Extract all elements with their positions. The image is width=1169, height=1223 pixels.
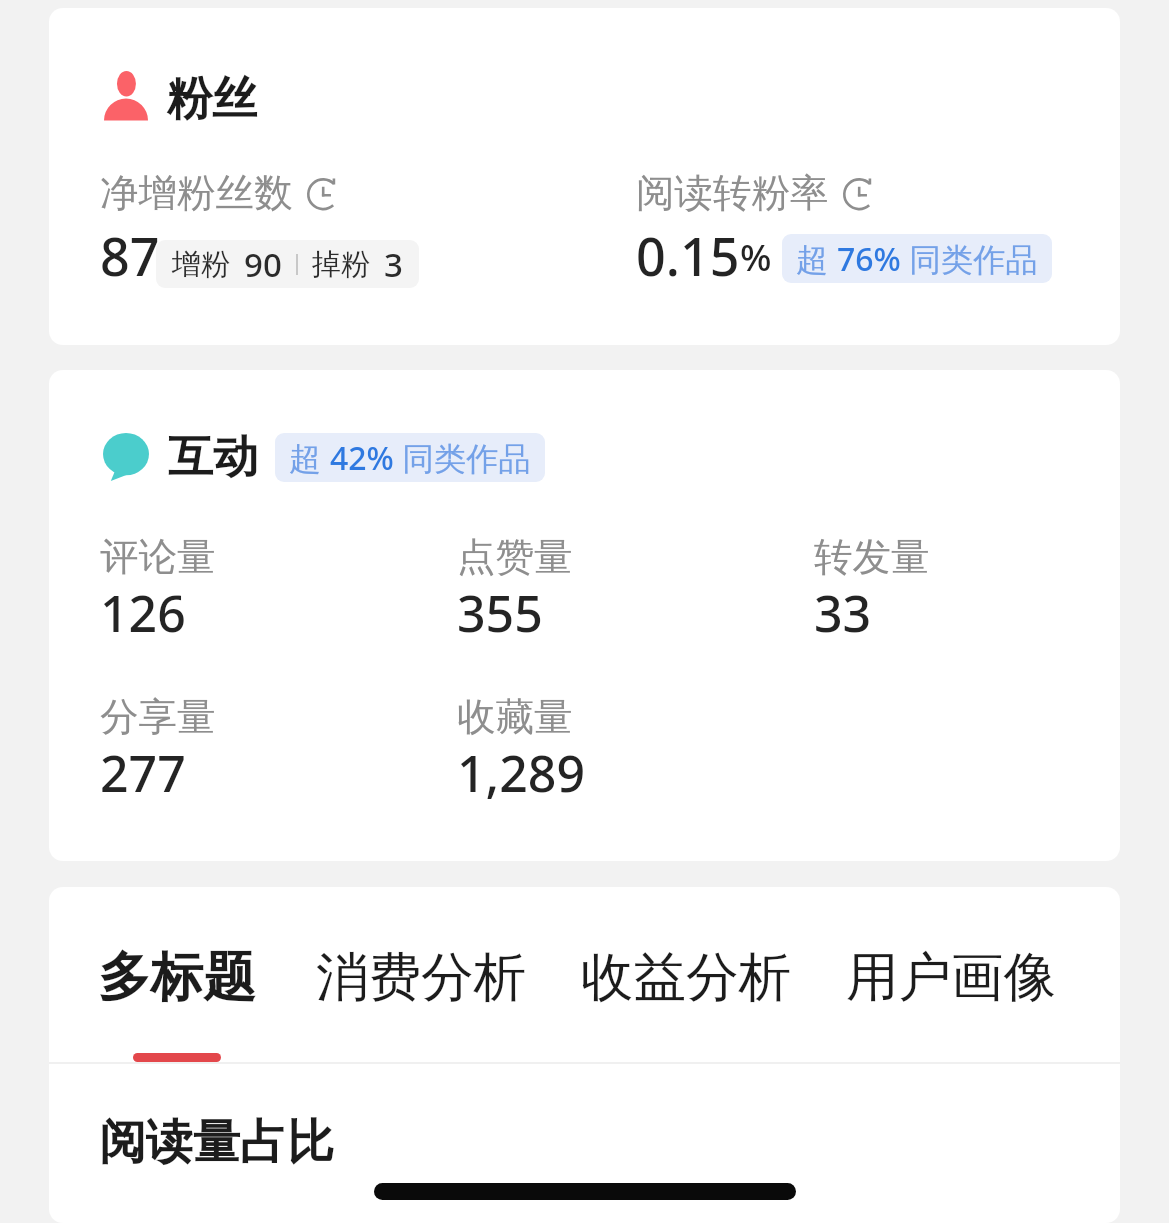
button[interactable]: 用户画像 — [846, 944, 1056, 1062]
button[interactable]: 收益分析 — [581, 944, 791, 1062]
button[interactable]: 点赞量 — [457, 533, 814, 650]
button[interactable]: 评论量 — [100, 533, 457, 650]
button[interactable]: 净增粉丝数 — [100, 169, 343, 218]
staticText: 评论量 — [100, 533, 216, 582]
button[interactable]: 互动 — [100, 429, 545, 486]
button[interactable]: 多标题 — [98, 944, 256, 1062]
staticText: 转发量 — [814, 533, 930, 582]
staticText: 互动 — [168, 429, 258, 486]
button[interactable]: 粉丝 — [100, 71, 257, 128]
staticText: 87 — [100, 220, 160, 291]
other: Recently updated — [843, 175, 879, 212]
staticText: 粉丝 — [167, 71, 257, 128]
staticText: 分享量 — [100, 693, 216, 742]
staticText: 超 — [289, 436, 330, 480]
staticText: 同类作品 — [901, 237, 1038, 281]
staticText: 90 — [244, 242, 282, 287]
staticText: 多标题 — [98, 944, 256, 1010]
staticText: 净增粉丝数 — [100, 169, 293, 218]
button[interactable]: 0.15 — [636, 220, 1052, 291]
staticText: 用户画像 — [846, 944, 1056, 1010]
staticText: 33 — [814, 579, 872, 647]
staticText: 0.15 — [636, 220, 740, 291]
staticText: 3 — [384, 242, 403, 287]
button[interactable]: 超 — [782, 234, 1052, 283]
staticText: 1,289 — [457, 739, 586, 807]
button[interactable]: 超 — [275, 433, 545, 482]
staticText: 掉粉 — [312, 246, 370, 283]
staticText: 增粉 — [172, 246, 230, 283]
staticText: 超 — [796, 237, 837, 281]
staticText: 355 — [457, 579, 543, 647]
staticText: 收藏量 — [457, 693, 573, 742]
staticText: 42% — [330, 436, 394, 480]
button[interactable]: 87 — [100, 220, 423, 291]
button[interactable]: 阅读量占比 — [49, 1113, 334, 1172]
button[interactable]: 阅读转粉率 — [636, 169, 879, 218]
other: Recently updated — [307, 175, 343, 212]
staticText: 收益分析 — [581, 944, 791, 1010]
staticText: 消费分析 — [316, 944, 526, 1010]
button[interactable]: 收藏量 — [457, 693, 814, 810]
staticText: 126 — [100, 579, 186, 647]
staticText: 277 — [100, 739, 186, 807]
staticText: 点赞量 — [457, 533, 573, 582]
button[interactable]: 消费分析 — [316, 944, 526, 1062]
staticText: 同类作品 — [394, 436, 531, 480]
staticText: 阅读转粉率 — [636, 169, 829, 218]
button[interactable]: 分享量 — [100, 693, 457, 810]
staticText: % — [740, 231, 772, 281]
staticText: 76% — [837, 237, 901, 281]
button[interactable]: 转发量 — [814, 533, 930, 650]
